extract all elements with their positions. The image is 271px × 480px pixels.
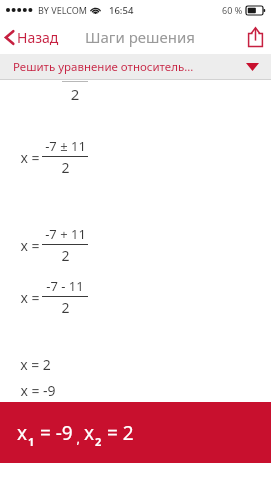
staticText: -7 ± 11 [45,137,86,155]
staticText: = -9 [35,420,73,446]
staticText: x [17,420,28,446]
staticText: x = [20,288,40,307]
staticText: 60 % [222,4,243,16]
staticText: , [73,429,84,447]
staticText: 2 [61,246,70,265]
staticText: 2 [95,434,102,449]
staticText: -7 + 11 [45,225,86,243]
button[interactable]: x [0,402,271,463]
staticText: x [84,420,95,446]
staticText: 16:54 [109,4,134,17]
button[interactable]: Назад [0,24,65,51]
staticText: 2 [61,158,70,177]
staticText: 1 [28,434,35,449]
staticText: x = 2 [20,355,51,374]
staticText: Решить уравнение относитель... [13,59,194,75]
button[interactable]: Решить уравнение относитель... [0,54,271,80]
staticText: x = [20,148,40,167]
staticText: = 2 [102,420,134,446]
staticText: BY VELCOM [38,4,87,16]
staticText: -7 - 11 [46,277,84,295]
staticText: x = [20,236,40,255]
staticText: Шаги решения [85,27,195,47]
button[interactable]: Share [240,23,271,51]
staticText: Назад [17,28,59,47]
staticText: x = -9 [20,381,56,400]
staticText: 2 [61,298,70,317]
staticText: 2 [62,84,88,104]
